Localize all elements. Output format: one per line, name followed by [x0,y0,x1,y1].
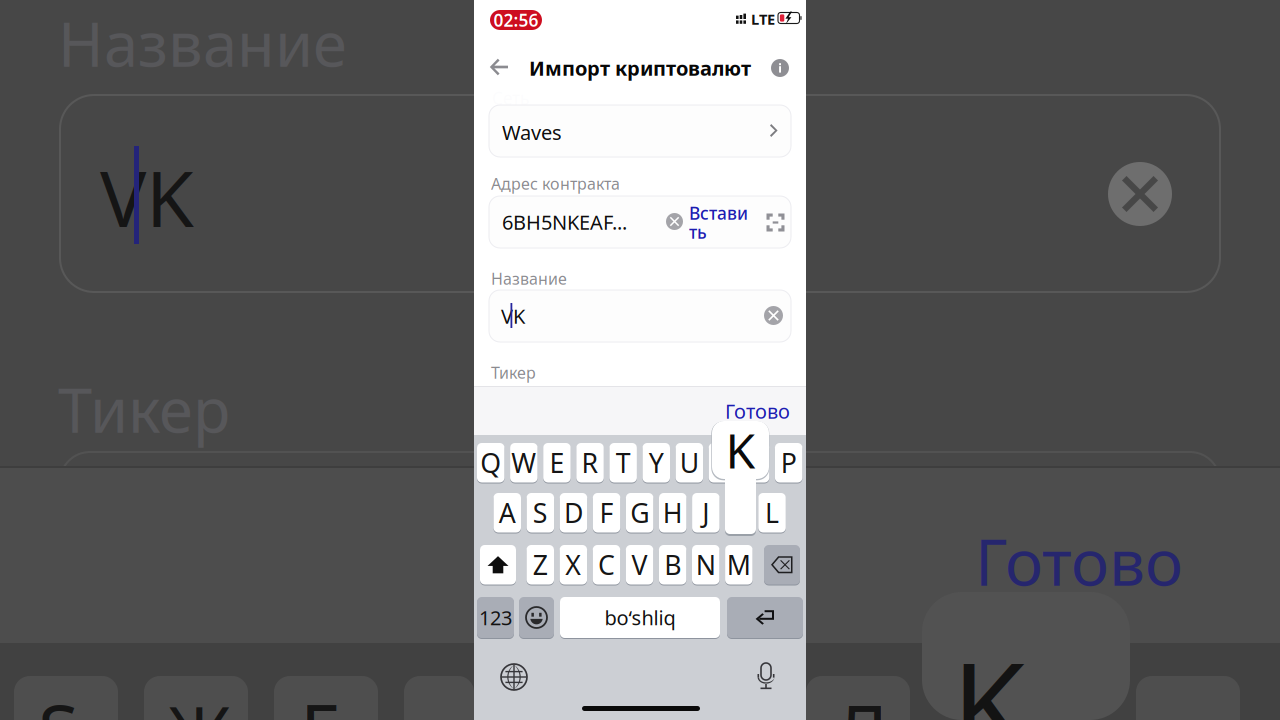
staticText: H [663,495,683,530]
button[interactable]: bo‘shliq [560,596,720,638]
staticText: VK [100,146,194,248]
staticText: V [631,547,647,582]
button[interactable]: Numbers [477,596,514,638]
staticText: M [727,547,751,582]
button[interactable]: Q [477,442,504,483]
staticText: T [616,445,631,480]
button[interactable]: Emoji [519,596,554,638]
staticText: 6BH5NKEAF... [502,209,627,235]
staticText: I [718,445,727,480]
staticText: 02:56 [493,8,538,31]
button[interactable]: K [725,492,753,533]
staticText: Готово [725,398,790,424]
staticText: ть [689,220,707,243]
staticText: A [499,495,516,530]
button[interactable]: Z [526,544,554,585]
staticText: Z [533,547,548,582]
button[interactable]: Встави [689,204,755,244]
staticText: Waves [502,119,562,146]
button[interactable]: A [493,492,521,533]
button[interactable]: D [560,492,587,533]
button[interactable]: Back [484,56,514,78]
staticText: 123 [479,604,512,631]
staticText: Г [300,680,338,720]
staticText: LTE [751,9,775,29]
staticText: J [702,495,709,530]
button[interactable]: P [775,442,802,483]
staticText: Q [480,445,501,480]
button[interactable]: Готово [708,398,790,424]
staticText: Адрес контракта [491,173,620,194]
staticText: E [549,445,564,480]
button[interactable]: Change keyboard [501,664,527,690]
staticText: O [745,445,766,480]
staticText: Л [836,680,888,720]
button[interactable]: E [543,442,571,483]
staticText: C [598,547,615,582]
staticText: X [565,547,581,582]
button[interactable]: W [510,442,538,483]
button[interactable]: U [676,442,703,483]
button[interactable]: V [626,544,653,585]
button[interactable]: R [576,442,604,483]
staticText: Импорт криптовалют [529,55,751,81]
staticText: D [564,495,583,530]
button[interactable]: X [560,544,587,585]
button[interactable]: L [758,492,786,533]
staticText: Тикер [58,368,230,450]
staticText: Встави [689,201,748,224]
button[interactable]: Return [727,596,803,638]
button[interactable]: Info [770,58,790,78]
staticText: Готово [975,518,1183,603]
staticText: L [765,495,779,530]
button[interactable]: Clear text [666,213,683,230]
button[interactable]: J [692,492,720,533]
button[interactable]: M [725,544,753,585]
button[interactable]: Shift [480,544,516,585]
staticText: P [781,445,797,480]
button[interactable]: B [659,544,686,585]
button[interactable]: H [659,492,686,533]
staticText: K [952,623,1026,720]
button[interactable]: Delete [764,544,800,585]
staticText: R [581,445,598,480]
staticText: VK [501,303,525,329]
staticText: Y [649,445,664,480]
staticText: U [680,445,699,480]
button[interactable]: F [593,492,620,533]
staticText: Ж [168,684,231,720]
button[interactable]: G [626,492,653,533]
staticText: S [38,680,79,720]
staticText: G [630,495,649,530]
staticText: B [664,547,681,582]
staticText: Название [491,268,567,289]
staticText: S [533,495,548,530]
button[interactable]: Dictate [756,663,775,690]
staticText: K [725,418,755,482]
staticText: F [599,495,613,530]
button[interactable]: Clear text [764,306,783,325]
button[interactable]: Y [642,442,670,483]
button[interactable]: C [593,544,620,585]
staticText: W [511,445,536,480]
staticText: bo‘shliq [604,604,675,631]
staticText: N [696,547,716,582]
button[interactable]: O [742,442,769,483]
button[interactable]: Waves [489,105,791,157]
staticText: Тикер [491,362,536,383]
staticText: Название [58,2,347,84]
button[interactable]: N [692,544,719,585]
button[interactable]: T [609,442,637,483]
button[interactable]: Scan QR code [766,213,784,231]
button[interactable]: S [527,492,554,533]
button[interactable]: I [709,442,736,483]
